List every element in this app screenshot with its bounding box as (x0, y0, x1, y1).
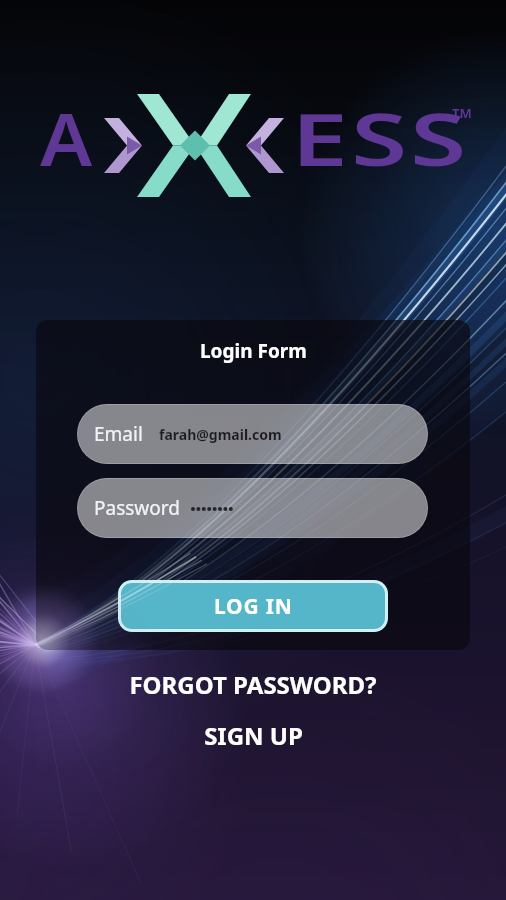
button[interactable]: Email (77, 404, 428, 464)
staticText: ESS (291, 89, 470, 187)
button[interactable]: LOG IN (118, 580, 388, 632)
staticText: TM (452, 104, 472, 122)
button[interactable]: SIGN UP (0, 719, 506, 752)
staticText: SIGN UP (204, 719, 303, 752)
staticText: Password (94, 495, 180, 521)
staticText: Login Form (200, 338, 307, 364)
staticText: farah@gmail.com (159, 425, 282, 444)
button[interactable]: Password (77, 478, 428, 538)
staticText: FORGOT PASSWORD? (129, 668, 377, 701)
staticText: LOG IN (214, 592, 293, 621)
button[interactable]: FORGOT PASSWORD? (0, 668, 506, 701)
staticText: Email (94, 421, 143, 447)
staticText: A (40, 89, 93, 187)
